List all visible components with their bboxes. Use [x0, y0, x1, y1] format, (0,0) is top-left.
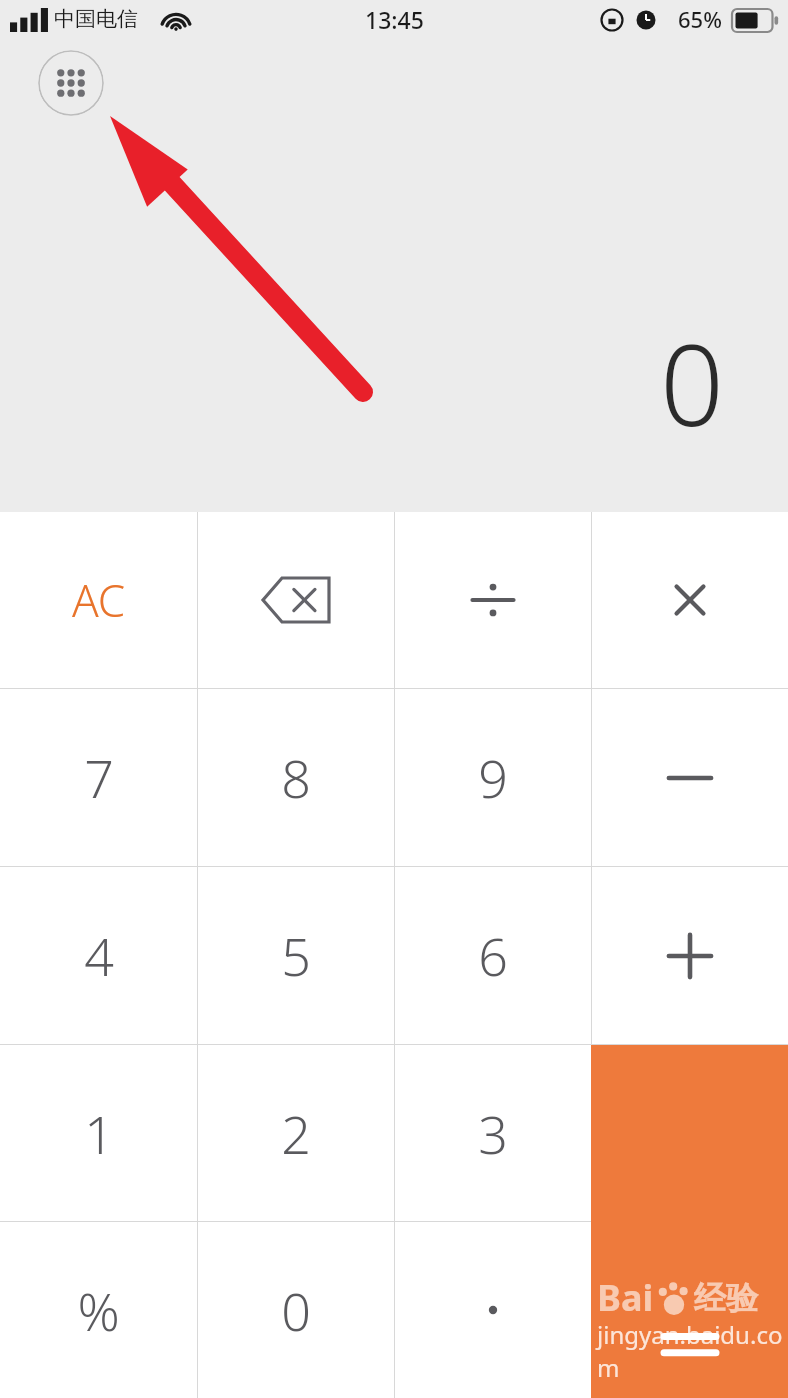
staticText: 5: [281, 920, 311, 991]
staticText: Bai: [597, 1273, 654, 1322]
button[interactable]: Decimal point: [395, 1222, 591, 1398]
staticText: 0: [660, 306, 724, 459]
button[interactable]: 4: [0, 867, 197, 1044]
staticText: 13:45: [365, 4, 424, 35]
staticText: jingyan.baidu.com: [597, 1318, 788, 1384]
staticText: 9: [478, 742, 508, 813]
staticText: AC: [72, 570, 126, 630]
button[interactable]: Multiply: [592, 512, 788, 688]
button[interactable]: 0: [198, 1222, 394, 1398]
button[interactable]: Plus: [592, 867, 788, 1044]
staticText: 0: [281, 1275, 311, 1346]
staticText: 中国电信: [54, 6, 138, 32]
staticText: 4: [84, 920, 114, 991]
button[interactable]: Divide: [395, 512, 591, 688]
staticText: 6: [478, 920, 508, 991]
button[interactable]: 2: [198, 1045, 394, 1221]
other: Decimal point: [485, 1302, 501, 1318]
staticText: 经验: [694, 1278, 758, 1318]
button[interactable]: Apps: [38, 50, 104, 116]
other: Multiply: [666, 576, 714, 624]
other: Divide: [466, 573, 520, 627]
staticText: 2: [281, 1098, 311, 1169]
other: Plus: [666, 932, 714, 980]
button[interactable]: 9: [395, 689, 591, 866]
button[interactable]: Equals: [591, 1045, 788, 1398]
staticText: 7: [84, 742, 114, 813]
other: Backspace: [261, 576, 331, 624]
button[interactable]: 1: [0, 1045, 197, 1221]
staticText: 1: [84, 1098, 114, 1169]
button[interactable]: 7: [0, 689, 197, 866]
button[interactable]: %: [0, 1222, 197, 1398]
button[interactable]: 3: [395, 1045, 591, 1221]
staticText: %: [77, 1275, 120, 1346]
button[interactable]: Backspace: [198, 512, 394, 688]
other: Minus: [666, 768, 714, 788]
button[interactable]: AC: [0, 512, 197, 688]
button[interactable]: 6: [395, 867, 591, 1044]
button[interactable]: 8: [198, 689, 394, 866]
button[interactable]: 5: [198, 867, 394, 1044]
staticText: 3: [478, 1098, 508, 1169]
staticText: 65%: [678, 4, 722, 34]
staticText: 8: [281, 742, 311, 813]
button[interactable]: Minus: [592, 689, 788, 866]
